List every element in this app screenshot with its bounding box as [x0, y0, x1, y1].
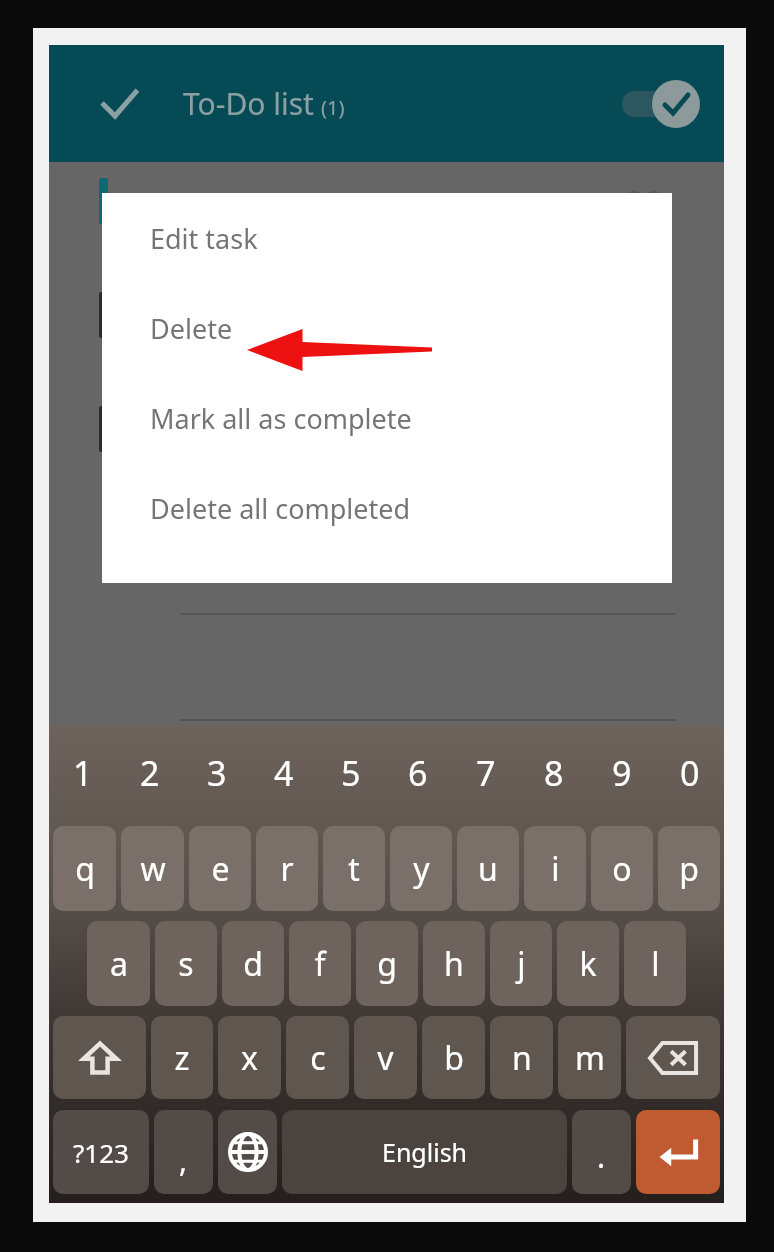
staticText: a	[110, 942, 128, 986]
staticText: y	[413, 847, 430, 891]
button[interactable]: k	[557, 921, 619, 1006]
button[interactable]: p	[658, 826, 720, 911]
button[interactable]: 5	[317, 725, 384, 821]
button[interactable]: 8	[520, 725, 588, 821]
button[interactable]: h	[423, 921, 485, 1006]
staticText: z	[174, 1036, 190, 1080]
button[interactable]: b	[422, 1016, 485, 1099]
staticText: f	[314, 942, 326, 986]
staticText: o	[612, 847, 632, 891]
button[interactable]: g	[356, 921, 418, 1006]
button[interactable]: w	[121, 826, 184, 911]
button[interactable]: e	[189, 826, 251, 911]
staticText: g	[377, 942, 397, 986]
staticText: u	[478, 847, 498, 891]
button[interactable]: Enter	[636, 1110, 720, 1194]
staticText: q	[75, 847, 95, 891]
button[interactable]: 1	[49, 725, 116, 821]
button[interactable]: z	[151, 1016, 213, 1099]
staticText: ?123	[73, 1135, 129, 1170]
button[interactable]: Comma	[154, 1110, 213, 1194]
staticText: 2	[140, 750, 160, 796]
staticText: 3	[207, 750, 227, 796]
button[interactable]: 3	[183, 725, 250, 821]
staticText: To-Do list	[183, 83, 314, 124]
button[interactable]: c	[286, 1016, 349, 1099]
staticText: ,	[179, 1140, 188, 1181]
button[interactable]: 0	[656, 725, 724, 821]
button[interactable]: 9	[588, 725, 656, 821]
button[interactable]: r	[256, 826, 318, 911]
staticText: e	[211, 847, 230, 891]
staticText: c	[310, 1036, 326, 1080]
button[interactable]: i	[524, 826, 586, 911]
button[interactable]: 2	[116, 725, 183, 821]
button[interactable]: Backspace	[626, 1016, 720, 1099]
button[interactable]: v	[354, 1016, 417, 1099]
staticText: x	[241, 1036, 258, 1080]
button[interactable]: y	[390, 826, 452, 911]
button[interactable]: Toggle completed	[612, 73, 702, 135]
button[interactable]: Space	[282, 1110, 567, 1194]
staticText: English	[382, 1135, 468, 1169]
button[interactable]: d	[222, 921, 284, 1006]
button[interactable]: Delete all completed	[102, 463, 672, 553]
staticText: 0	[680, 750, 700, 796]
staticText: 8	[544, 750, 564, 796]
staticText: t	[348, 847, 360, 891]
staticText: h	[444, 942, 464, 986]
staticText: 5	[341, 750, 361, 796]
button[interactable]: m	[558, 1016, 621, 1099]
staticText: w	[140, 847, 166, 891]
button[interactable]: Period	[572, 1110, 631, 1194]
button[interactable]: Edit task	[102, 193, 672, 283]
button[interactable]: u	[457, 826, 519, 911]
button[interactable]: Mark all as complete	[102, 373, 672, 463]
staticText: (1)	[321, 94, 345, 121]
staticText: j	[517, 942, 526, 986]
staticText: m	[575, 1036, 605, 1080]
staticText: r	[280, 847, 294, 891]
staticText: Delete all completed	[150, 490, 411, 527]
staticText: 7	[476, 750, 496, 796]
staticText: 4	[274, 750, 294, 796]
button[interactable]: n	[490, 1016, 553, 1099]
button[interactable]: t	[323, 826, 385, 911]
staticText: Mark all as complete	[150, 400, 412, 437]
button[interactable]: a	[87, 921, 150, 1006]
button[interactable]: 7	[452, 725, 520, 821]
button[interactable]: 6	[384, 725, 452, 821]
button[interactable]: Delete	[102, 283, 672, 373]
button[interactable]: Shift	[53, 1016, 146, 1099]
button[interactable]: 4	[250, 725, 317, 821]
button[interactable]: o	[591, 826, 653, 911]
button[interactable]: s	[155, 921, 217, 1006]
staticText: n	[512, 1036, 532, 1080]
button[interactable]: q	[53, 826, 116, 911]
staticText: Delete	[150, 310, 233, 347]
staticText: v	[377, 1036, 394, 1080]
staticText: k	[579, 942, 597, 986]
staticText: 1	[73, 750, 93, 796]
staticText: l	[651, 942, 660, 986]
button[interactable]: Done	[93, 78, 145, 130]
button[interactable]: Change language	[218, 1110, 277, 1194]
button[interactable]: j	[490, 921, 552, 1006]
staticText: p	[679, 847, 699, 891]
staticText: 6	[408, 750, 428, 796]
staticText: b	[444, 1036, 464, 1080]
button[interactable]: f	[289, 921, 351, 1006]
button[interactable]: l	[624, 921, 686, 1006]
staticText: i	[551, 847, 560, 891]
staticText: .	[597, 1136, 606, 1177]
button[interactable]: Symbols	[53, 1110, 149, 1194]
staticText: d	[243, 942, 263, 986]
staticText: Edit task	[150, 220, 258, 257]
staticText: s	[178, 942, 194, 986]
button[interactable]: x	[218, 1016, 281, 1099]
staticText: 9	[612, 750, 632, 796]
